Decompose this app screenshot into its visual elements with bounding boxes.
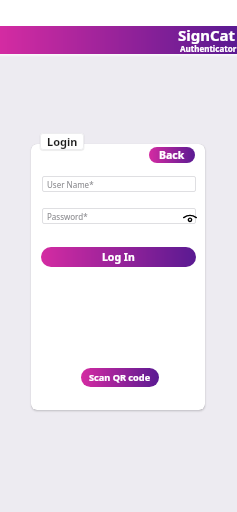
button[interactable]: Password*	[42, 208, 196, 224]
staticText: Scan QR code	[89, 371, 151, 384]
staticText: SignCat	[178, 25, 236, 45]
staticText: Back	[159, 148, 185, 162]
staticText: Log In	[102, 250, 135, 264]
staticText: Password*	[47, 211, 88, 222]
button[interactable]: Log In	[41, 247, 196, 267]
staticText: User Name*	[47, 179, 94, 190]
button[interactable]: Scan QR code	[81, 368, 159, 387]
staticText: Login	[47, 134, 78, 149]
button[interactable]: Back	[149, 147, 195, 163]
staticText: Authenticator	[180, 43, 237, 54]
button[interactable]: Login	[40, 133, 84, 150]
button[interactable]: User Name*	[42, 176, 196, 192]
button[interactable]: Show password	[180, 208, 200, 224]
